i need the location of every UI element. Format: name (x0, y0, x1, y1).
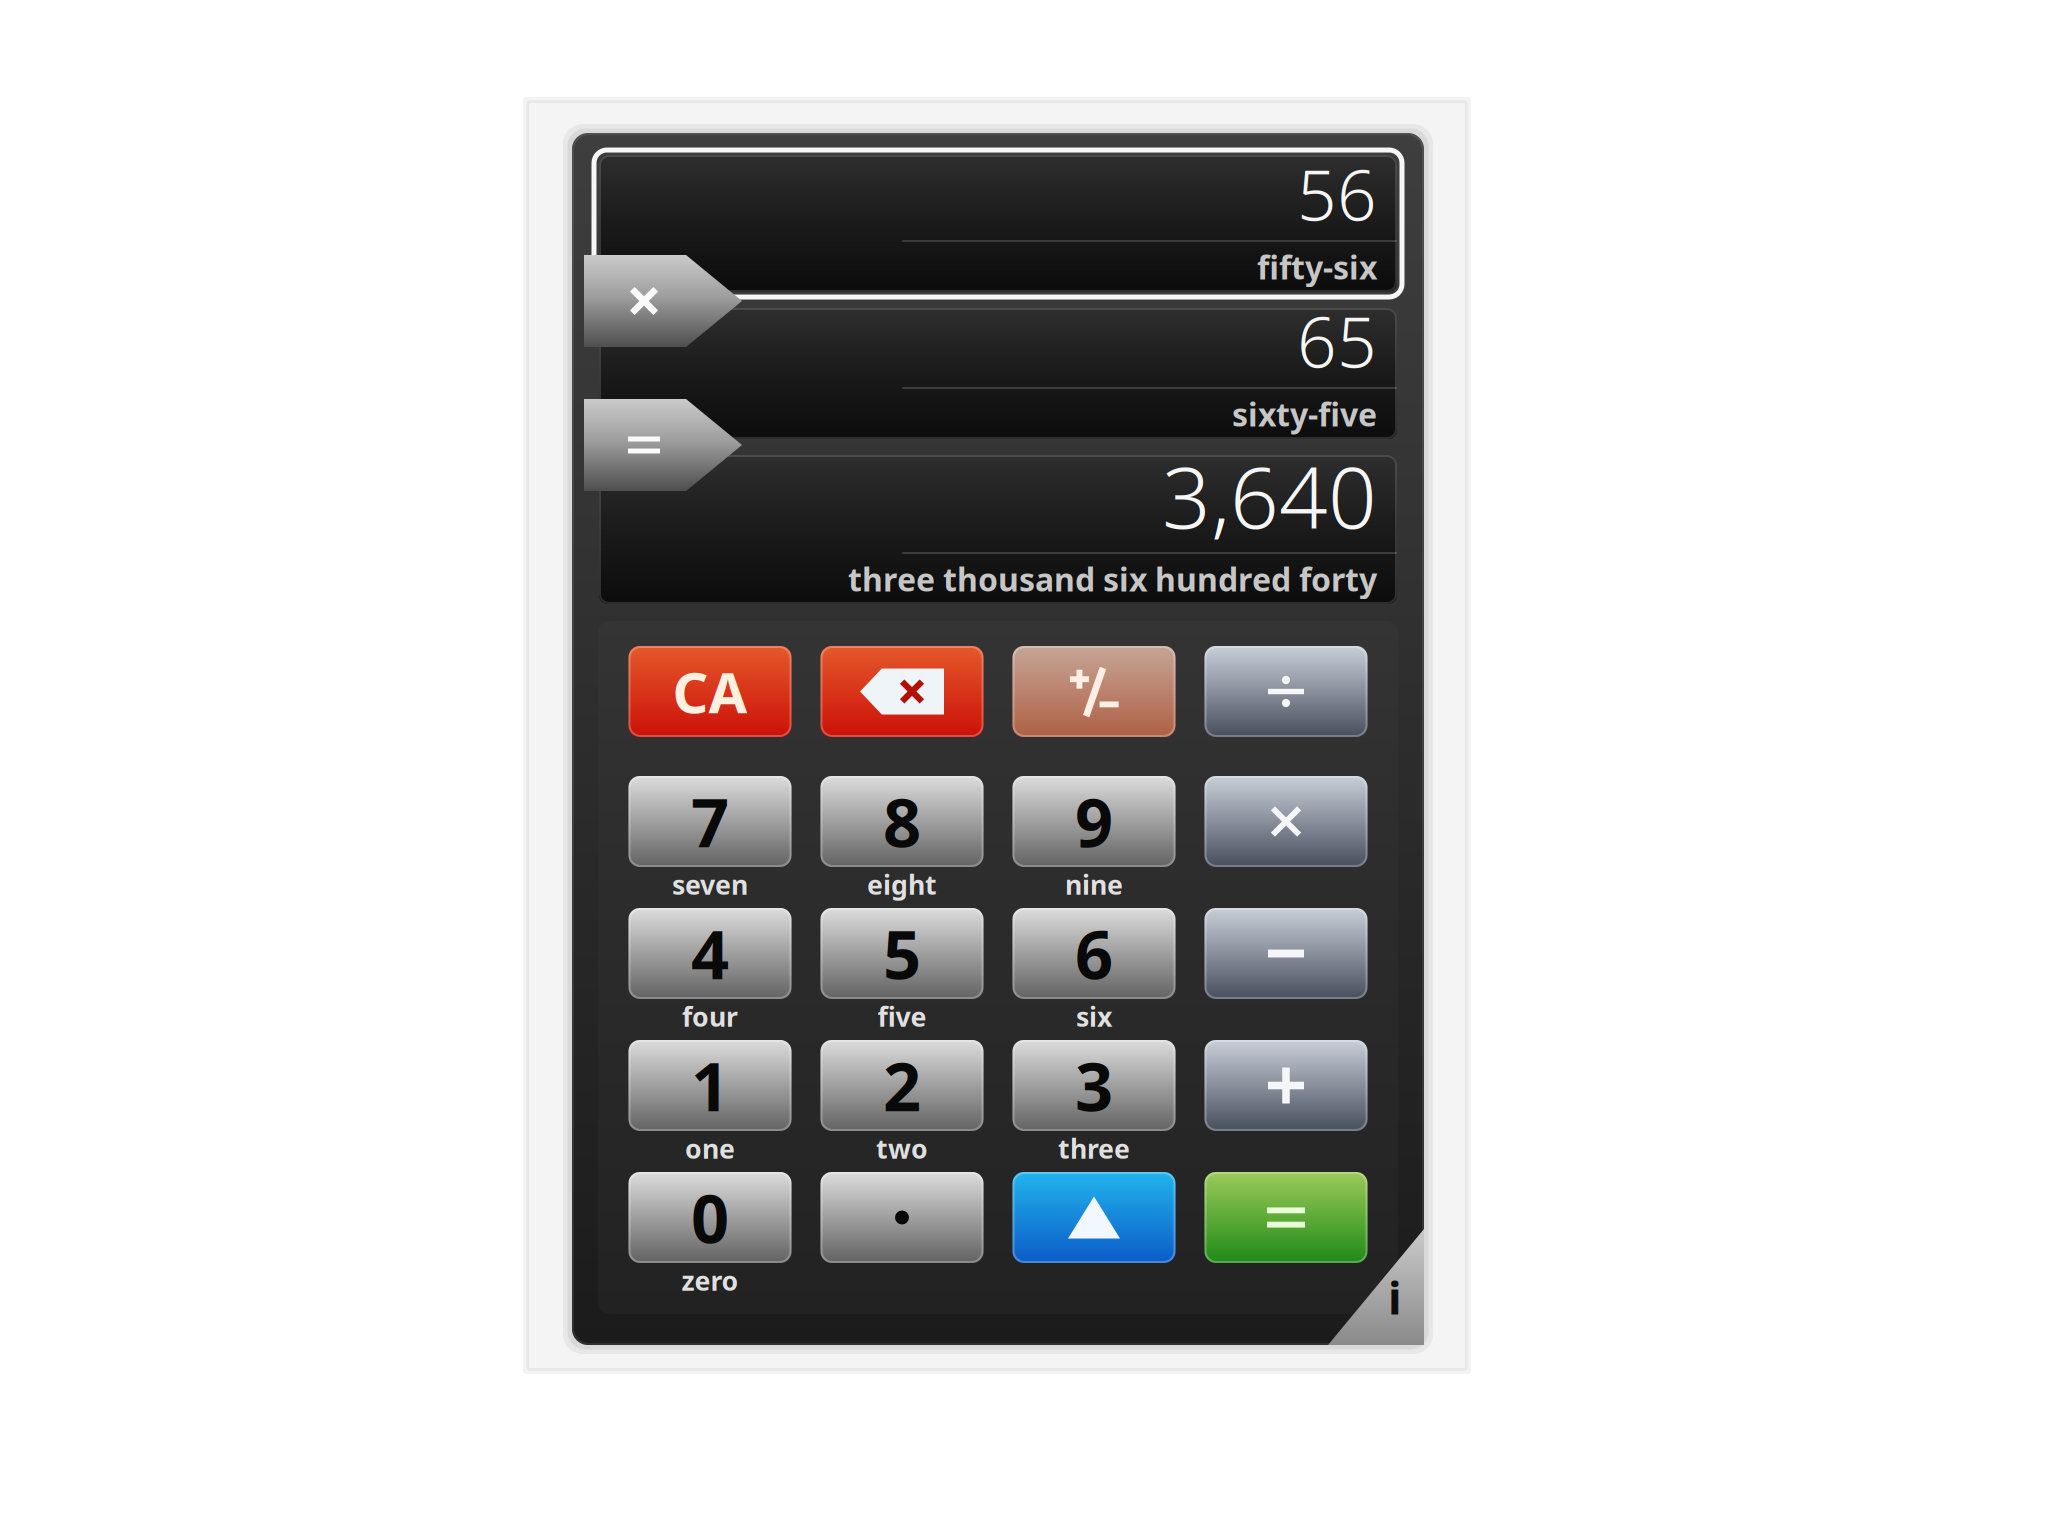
staticText: eight (867, 867, 937, 902)
button[interactable]: two (820, 1040, 983, 1131)
staticText: zero (681, 1263, 738, 1298)
button[interactable]: three (1012, 1040, 1175, 1131)
button[interactable]: eight (820, 776, 983, 867)
button[interactable]: nine (1012, 776, 1175, 867)
staticText: 7 (691, 777, 729, 866)
button[interactable]: Multiply operand (584, 255, 742, 347)
button[interactable]: six (1012, 908, 1175, 999)
staticText: five (877, 999, 926, 1034)
staticText: 65 (1297, 295, 1377, 387)
button[interactable]: Equals result (584, 399, 742, 491)
staticText: 8 (883, 777, 921, 866)
staticText: 1 (691, 1041, 729, 1130)
button[interactable]: Info (1328, 1229, 1424, 1345)
button[interactable]: Equals (1204, 1172, 1367, 1263)
button[interactable]: one (628, 1040, 791, 1131)
staticText: 3 (1075, 1041, 1113, 1130)
button[interactable]: zero (628, 1172, 791, 1263)
button[interactable]: Minus (1204, 908, 1367, 999)
button[interactable]: Clear all (628, 646, 791, 737)
button[interactable]: five (820, 908, 983, 999)
staticText: sixty-five (1232, 393, 1377, 435)
staticText: 9 (1075, 777, 1113, 866)
button[interactable]: Backspace (820, 646, 983, 737)
staticText: 5 (883, 909, 921, 998)
button[interactable]: seven (628, 776, 791, 867)
staticText: 6 (1075, 909, 1113, 998)
button[interactable]: Multiply (1204, 776, 1367, 867)
staticText: three (1058, 1131, 1130, 1166)
button[interactable]: Decimal point (820, 1172, 983, 1263)
button[interactable]: Divide (1204, 646, 1367, 737)
button[interactable]: four (628, 908, 791, 999)
staticText: 4 (691, 909, 729, 998)
button[interactable]: Plus (1204, 1040, 1367, 1131)
staticText: CA (672, 654, 747, 729)
button[interactable]: Plus minus (1012, 646, 1175, 737)
staticText: 0 (691, 1173, 729, 1262)
staticText: 3,640 (1162, 439, 1377, 552)
staticText: three thousand six hundred forty (848, 558, 1377, 600)
staticText: six (1076, 999, 1112, 1034)
staticText: nine (1065, 867, 1123, 902)
staticText: 2 (883, 1041, 921, 1130)
staticText: 56 (1297, 148, 1377, 240)
staticText: four (682, 999, 738, 1034)
staticText: one (685, 1131, 735, 1166)
staticText: two (876, 1131, 928, 1166)
staticText: i (1388, 1267, 1402, 1327)
button[interactable]: Speak (1012, 1172, 1175, 1263)
staticText: fifty-six (1257, 246, 1377, 288)
staticText: seven (672, 867, 748, 902)
